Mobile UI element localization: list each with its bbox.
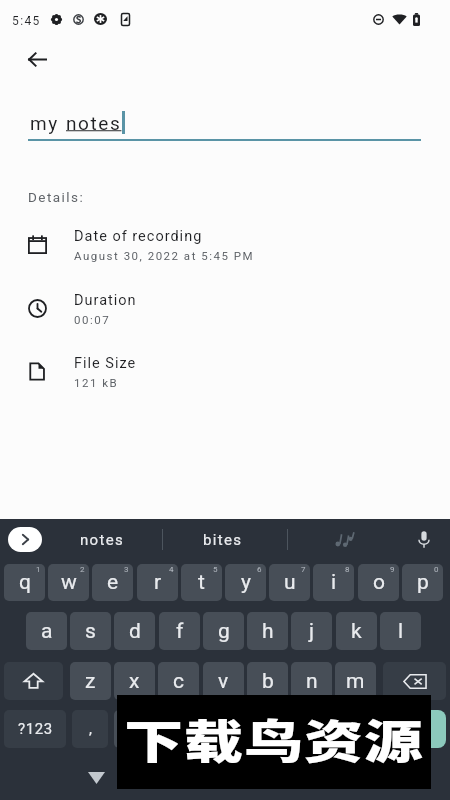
staticText: , [89, 720, 92, 738]
staticText: b [262, 669, 274, 694]
staticText: 1 [36, 565, 41, 574]
button[interactable]: x [114, 662, 155, 700]
staticText: 5:45 [12, 14, 41, 28]
staticText: August 30, 2022 at 5:45 PM [74, 249, 255, 262]
button[interactable]: r [137, 564, 178, 601]
button[interactable]: f [159, 612, 200, 650]
staticText: 下载鸟资源 [124, 704, 424, 772]
staticText: 3 [124, 565, 129, 574]
staticText: my [30, 112, 66, 134]
button[interactable]: Duration [0, 292, 450, 336]
button[interactable]: Enter [392, 710, 446, 748]
button[interactable]: m [335, 662, 376, 700]
staticText: 9 [390, 565, 395, 574]
button[interactable]: bites [184, 521, 261, 558]
staticText: 00:07 [74, 313, 111, 326]
button[interactable]: Period [350, 710, 386, 748]
button[interactable]: c [158, 662, 199, 700]
button[interactable]: w [48, 564, 89, 601]
button[interactable]: Backspace [383, 662, 446, 700]
button[interactable]: Comma [72, 710, 108, 748]
staticText: i [331, 570, 337, 595]
button[interactable]: l [380, 612, 421, 650]
button[interactable]: Stickers and GIFs [320, 523, 372, 556]
button[interactable]: Expand suggestions [8, 527, 42, 552]
staticText: n [306, 669, 318, 694]
staticText: d [129, 619, 141, 644]
button[interactable]: my [0, 100, 450, 142]
staticText: l [398, 619, 404, 644]
button[interactable]: notes [63, 521, 140, 558]
button[interactable]: Date of recording [0, 228, 450, 272]
staticText: t [198, 570, 205, 595]
button[interactable]: q [4, 564, 45, 601]
button[interactable]: t [181, 564, 222, 601]
staticText: ?123 [18, 720, 53, 738]
button[interactable]: h [247, 612, 288, 650]
staticText: File Size [74, 355, 137, 372]
staticText: Duration [74, 292, 137, 309]
staticText: g [218, 619, 230, 644]
staticText: s [85, 619, 96, 644]
button[interactable]: ?123 [4, 710, 66, 748]
button[interactable]: File Size [0, 355, 450, 399]
button[interactable]: j [291, 612, 332, 650]
staticText: u [284, 570, 296, 595]
button[interactable]: z [70, 662, 111, 700]
staticText: m [346, 669, 365, 694]
staticText: k [351, 619, 362, 644]
staticText: 121 kB [74, 376, 119, 389]
staticText: j [309, 619, 315, 644]
staticText: q [19, 570, 31, 595]
button[interactable]: u [269, 564, 310, 601]
staticText: notes [66, 112, 122, 134]
staticText: 0 [434, 565, 439, 574]
staticText: z [85, 669, 96, 694]
staticText: p [417, 570, 429, 595]
button[interactable]: n [291, 662, 332, 700]
staticText: o [373, 570, 385, 595]
staticText: a [41, 619, 53, 644]
staticText: e [107, 570, 119, 595]
staticText: Date of recording [74, 228, 203, 245]
button[interactable]: e [92, 564, 133, 601]
button[interactable]: i [313, 564, 354, 601]
staticText: bites [203, 531, 243, 549]
button[interactable]: y [225, 564, 266, 601]
staticText: f [176, 619, 184, 644]
staticText: 2 [80, 565, 85, 574]
staticText: c [173, 669, 184, 694]
button[interactable]: b [247, 662, 288, 700]
staticText: 7 [301, 565, 306, 574]
staticText: y [241, 570, 251, 595]
button[interactable]: d [114, 612, 155, 650]
staticText: notes [80, 531, 124, 549]
staticText: . [366, 720, 370, 738]
button[interactable]: Hide keyboard [83, 765, 109, 791]
button[interactable]: Back [17, 39, 57, 79]
staticText: 8 [345, 565, 350, 574]
staticText: 4 [169, 565, 174, 574]
staticText: r [154, 570, 162, 595]
button[interactable]: g [203, 612, 244, 650]
button[interactable]: v [203, 662, 244, 700]
staticText: 5 [213, 565, 218, 574]
staticText: w [61, 570, 77, 595]
button[interactable]: a [26, 612, 67, 650]
staticText: x [129, 669, 140, 694]
button[interactable]: s [70, 612, 111, 650]
staticText: 6 [257, 565, 262, 574]
button[interactable]: Space [114, 710, 344, 748]
staticText: Details: [28, 189, 85, 205]
staticText: v [218, 669, 229, 694]
button[interactable]: Shift [4, 662, 63, 700]
staticText: h [262, 619, 274, 644]
button[interactable]: Voice input [408, 523, 440, 555]
button[interactable]: k [336, 612, 377, 650]
button[interactable]: o [358, 564, 399, 601]
button[interactable]: p [402, 564, 443, 601]
